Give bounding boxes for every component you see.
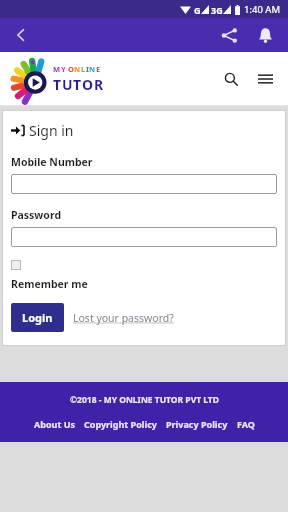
staticText: Copyright Policy (84, 418, 157, 430)
staticText: Mobile Number (11, 155, 93, 169)
button[interactable]: Text input (11, 227, 277, 247)
staticText: Remember me (11, 277, 88, 291)
staticText: Password (11, 208, 62, 222)
button[interactable]: Share (214, 20, 244, 50)
button[interactable]: Login (11, 303, 64, 332)
staticText: T (73, 75, 82, 94)
staticText: T (53, 75, 62, 94)
staticText: Lost your password? (73, 311, 174, 325)
button[interactable]: Back (6, 20, 36, 50)
staticText: 3G (211, 4, 223, 16)
staticText: O (68, 64, 74, 74)
button[interactable]: FAQ (237, 418, 255, 430)
button[interactable]: Text input (11, 174, 277, 194)
staticText: FAQ (237, 418, 255, 430)
staticText: ©2018 - MY ONLINE TUTOR PVT LTD (70, 394, 219, 406)
staticText: G (194, 4, 201, 16)
staticText: M (53, 64, 61, 74)
staticText: N (89, 64, 96, 74)
button[interactable]: Lost your password? (73, 307, 174, 329)
staticText: About Us (34, 418, 75, 430)
button[interactable]: Copyright Policy (84, 418, 157, 430)
staticText: I (86, 64, 89, 74)
staticText: Sign in (29, 121, 74, 140)
staticText: E (96, 64, 101, 74)
button[interactable]: Remember me checkbox (11, 260, 21, 270)
staticText: Login (22, 310, 53, 325)
staticText: R (94, 75, 104, 94)
button[interactable]: Search (218, 66, 244, 92)
button[interactable]: Notifications (250, 20, 280, 50)
button[interactable]: About Us (34, 418, 75, 430)
staticText: U (62, 75, 73, 94)
staticText: L (81, 64, 86, 74)
staticText: Y (61, 64, 66, 74)
button[interactable]: Menu (252, 66, 278, 92)
staticText: O (82, 75, 94, 94)
staticText: Privacy Policy (166, 418, 228, 430)
staticText: N (74, 64, 81, 74)
button[interactable]: Privacy Policy (166, 418, 228, 430)
staticText: 1:40 AM (244, 3, 281, 16)
